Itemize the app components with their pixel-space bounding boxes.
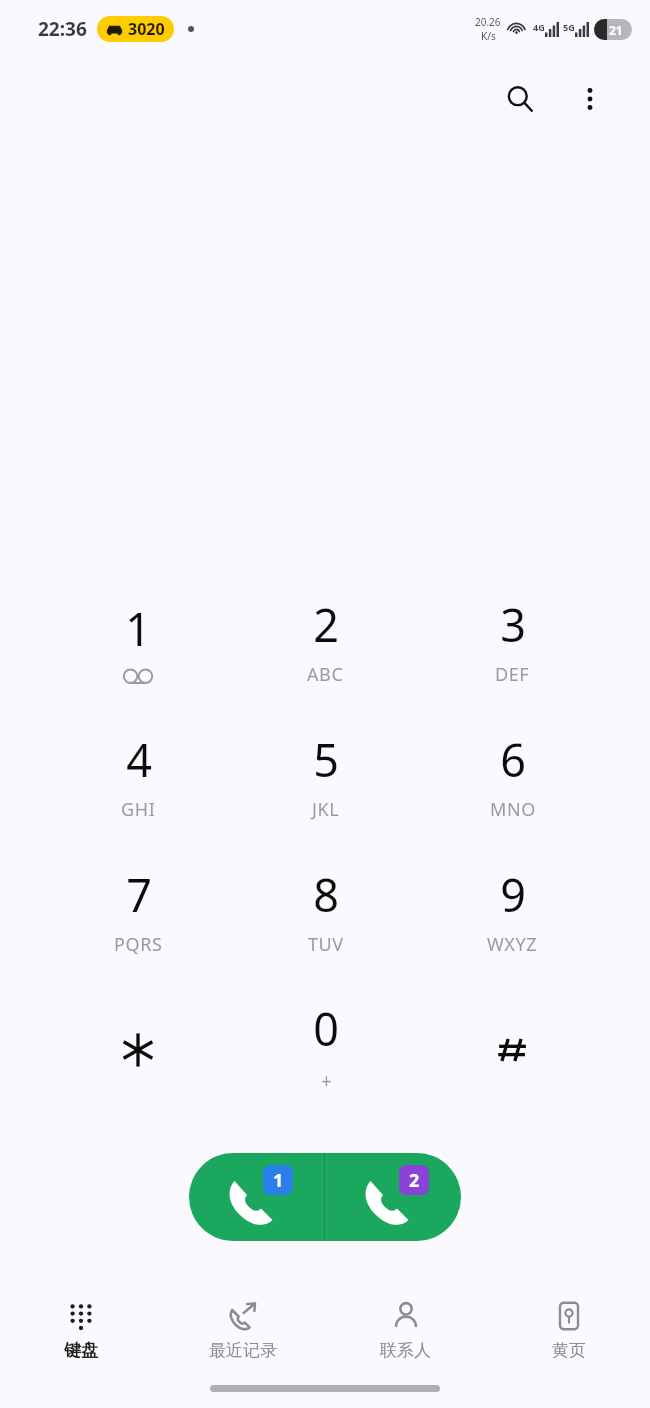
button[interactable]: 联系人 [324, 1289, 487, 1373]
staticText: 2 [313, 594, 339, 655]
staticText: GHI [121, 797, 156, 822]
staticText: 22:36 [38, 16, 87, 42]
staticText: 黄页 [552, 1340, 586, 1361]
button[interactable]: 5 [232, 708, 419, 843]
staticText: 1 [125, 598, 151, 659]
button[interactable]: 0 [232, 978, 419, 1113]
button[interactable]: 最近记录 [162, 1289, 324, 1373]
button[interactable]: Call with SIM 2 [325, 1153, 461, 1241]
staticText: 7 [126, 864, 152, 925]
staticText: 2 [409, 1168, 420, 1193]
staticText: 4G [533, 21, 545, 33]
staticText: TUV [308, 932, 344, 957]
staticText: PQRS [114, 932, 163, 957]
staticText: 键盘 [64, 1340, 98, 1361]
staticText: 最近记录 [209, 1340, 277, 1361]
staticText: WXYZ [487, 932, 538, 957]
button[interactable]: Search [494, 73, 546, 125]
button[interactable]: 6 [419, 708, 606, 843]
button[interactable]: 8 [232, 843, 419, 978]
staticText: 5 [313, 729, 339, 790]
staticText: + [321, 1068, 332, 1094]
staticText: 3020 [128, 18, 165, 40]
staticText: ABC [307, 662, 344, 687]
staticText: MNO [490, 797, 536, 822]
staticText: K/s [481, 29, 496, 43]
button[interactable]: Call with SIM 1 [189, 1153, 324, 1241]
staticText: 21 [609, 22, 623, 38]
button[interactable]: 3 [419, 573, 606, 708]
staticText: 0 [313, 998, 339, 1059]
staticText: 9 [500, 864, 526, 925]
button[interactable]: 9 [419, 843, 606, 978]
staticText: JKL [312, 797, 340, 822]
button[interactable]: 1 [44, 573, 232, 708]
button[interactable]: More options [564, 73, 616, 125]
staticText: DEF [495, 662, 530, 687]
staticText: 5G [563, 21, 575, 33]
button[interactable]: 7 [44, 843, 232, 978]
button[interactable]: 2 [232, 573, 419, 708]
staticText: 1 [273, 1168, 284, 1193]
staticText: 4 [126, 729, 152, 790]
button[interactable] [44, 978, 232, 1113]
button[interactable]: 键盘 [0, 1289, 162, 1373]
staticText: 20.26 [475, 15, 501, 29]
button[interactable]: 黄页 [487, 1289, 650, 1373]
staticText: 6 [500, 729, 526, 790]
button[interactable] [419, 978, 606, 1113]
staticText: 3 [500, 594, 526, 655]
staticText: 8 [313, 864, 339, 925]
button[interactable]: 4 [44, 708, 232, 843]
staticText: 联系人 [380, 1340, 431, 1361]
